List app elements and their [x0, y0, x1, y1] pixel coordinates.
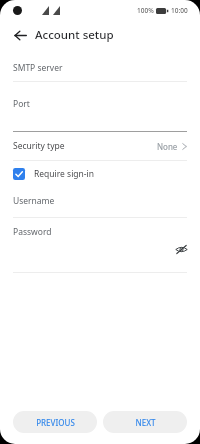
button[interactable]: Security type: [0, 132, 200, 160]
staticText: None: [157, 141, 178, 152]
staticText: 100%: [137, 6, 154, 15]
staticText: Port: [13, 98, 30, 110]
button[interactable]: NEXT: [103, 411, 187, 433]
staticText: 10:00: [171, 6, 188, 15]
staticText: NEXT: [135, 417, 156, 428]
staticText: Account setup: [35, 27, 114, 43]
staticText: Security type: [13, 140, 65, 152]
button[interactable]: Port: [0, 82, 200, 131]
button[interactable]: Back: [10, 25, 30, 45]
button[interactable]: Require sign-in: [0, 161, 200, 187]
staticText: SMTP server: [13, 62, 63, 74]
staticText: PREVIOUS: [36, 417, 75, 428]
staticText: Require sign-in: [34, 168, 95, 180]
staticText: Password: [13, 226, 52, 238]
button[interactable]: SMTP server: [0, 58, 200, 81]
staticText: Username: [13, 195, 55, 207]
button[interactable]: Username: [0, 187, 200, 217]
button[interactable]: Show password: [172, 240, 190, 258]
button[interactable]: PREVIOUS: [13, 411, 97, 433]
